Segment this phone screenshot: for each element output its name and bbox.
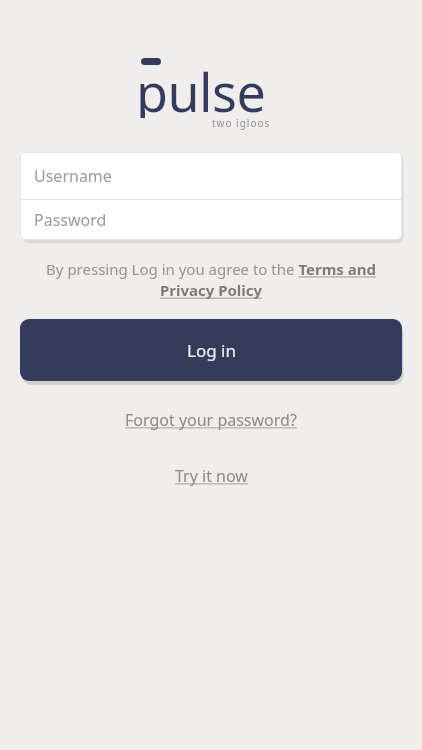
button[interactable]: Try it now <box>163 459 260 493</box>
staticText: Password <box>34 209 107 231</box>
button[interactable]: By pressing Log in you agree to the Term… <box>26 259 396 301</box>
button[interactable]: Forgot your password? <box>113 403 309 437</box>
staticText: Forgot your password? <box>125 409 297 431</box>
button[interactable]: Username <box>20 152 402 199</box>
button[interactable]: Log in <box>20 319 402 381</box>
staticText: Log in <box>187 339 236 362</box>
button[interactable]: Password <box>20 200 402 240</box>
staticText: By pressing Log in you agree to the Term… <box>26 259 396 301</box>
other: Pulse logo <box>136 52 286 114</box>
staticText: pulse <box>136 56 266 118</box>
staticText: Try it now <box>175 465 248 487</box>
staticText: Username <box>34 165 112 187</box>
staticText: two igloos <box>212 116 271 130</box>
